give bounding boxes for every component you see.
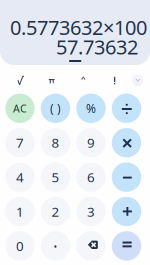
button[interactable]: 4	[5, 162, 35, 192]
button[interactable]: ·	[41, 231, 70, 261]
staticText: 0.5773632×100	[10, 14, 147, 40]
button[interactable]: Divide	[112, 94, 141, 123]
staticText: 1	[16, 203, 24, 220]
staticText: %	[86, 100, 96, 116]
staticText: 57.73632	[56, 33, 138, 60]
button[interactable]: Minus	[112, 162, 141, 192]
button[interactable]: AC	[5, 94, 35, 123]
button[interactable]: 3	[76, 197, 106, 226]
staticText: ·	[53, 234, 58, 257]
button[interactable]: Delete	[76, 231, 106, 261]
button[interactable]: ( )	[41, 94, 70, 123]
button[interactable]: Factorial	[102, 69, 128, 91]
button[interactable]: Power	[70, 69, 96, 91]
button[interactable]: 7	[5, 128, 35, 157]
staticText: 3	[87, 203, 95, 220]
staticText: 5	[51, 168, 59, 186]
button[interactable]: 8	[41, 128, 70, 157]
staticText: 6	[87, 168, 95, 186]
staticText: 9	[87, 134, 95, 151]
staticText: 2	[51, 203, 59, 220]
button[interactable]: 6	[76, 162, 106, 192]
button[interactable]: 5	[41, 162, 70, 192]
button[interactable]: Equals	[112, 231, 141, 261]
staticText: 8	[51, 134, 59, 151]
button[interactable]: 9	[76, 128, 106, 157]
button[interactable]: %	[76, 94, 106, 123]
staticText: 4	[16, 168, 24, 186]
button[interactable]: Pi	[39, 69, 65, 91]
button[interactable]: More functions	[132, 75, 143, 86]
button[interactable]: 0	[5, 231, 35, 261]
button[interactable]: Plus	[112, 197, 141, 226]
button[interactable]: Multiply	[112, 128, 141, 157]
button[interactable]: 1	[5, 197, 35, 226]
staticText: 0	[16, 237, 24, 255]
staticText: AC	[13, 101, 27, 115]
staticText: 7	[16, 134, 24, 151]
button[interactable]: 2	[41, 197, 70, 226]
button[interactable]: Square root	[8, 69, 34, 91]
staticText: ( )	[50, 100, 61, 116]
